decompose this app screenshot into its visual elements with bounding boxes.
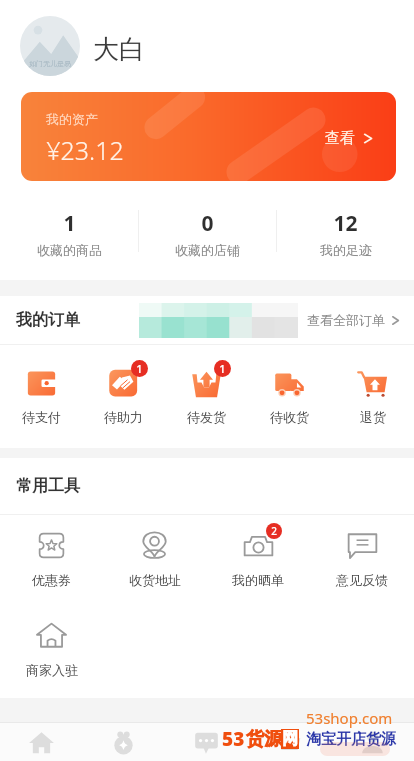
button[interactable]: 1 [0, 181, 138, 280]
staticText: 意见反馈 [336, 572, 388, 588]
button[interactable]: 优惠券 [0, 515, 103, 601]
button[interactable]: Cart [248, 723, 331, 761]
staticText: 12 [333, 209, 358, 238]
staticText: 53 [222, 726, 245, 752]
staticText: 查看全部订单 [307, 312, 385, 328]
button[interactable]: 商家入驻 [0, 604, 103, 692]
staticText: 收藏的商品 [37, 242, 102, 258]
staticText: 网 [282, 729, 298, 749]
staticText: 我的资产 [46, 111, 98, 127]
staticText: 常用工具 [16, 476, 80, 496]
staticText: 我的晒单 [232, 572, 284, 588]
button[interactable]: 2 [206, 515, 310, 601]
button[interactable]: 收货地址 [103, 515, 206, 601]
button[interactable]: Messages [165, 723, 248, 761]
staticText: 大白 [93, 33, 145, 66]
staticText: 1 [63, 209, 76, 238]
staticText: 待助力 [104, 409, 143, 425]
staticText: 优惠券 [32, 572, 71, 588]
button[interactable]: Avatar [20, 16, 80, 76]
button[interactable]: Profile [331, 723, 414, 761]
button[interactable]: 0 [139, 181, 276, 280]
staticText: 如门无儿是易 [29, 59, 71, 68]
staticText: 53shop.com [306, 708, 393, 728]
staticText: 退货 [360, 409, 386, 425]
staticText: 查看 [325, 129, 355, 148]
button[interactable]: 待收货 [248, 345, 331, 448]
button[interactable]: 查看全部订单 [307, 312, 400, 328]
staticText: 2 [271, 524, 277, 538]
button[interactable]: 查看 [325, 129, 374, 148]
staticText: 待支付 [22, 409, 61, 425]
staticText: 商家入驻 [26, 662, 78, 678]
staticText: 收货地址 [129, 572, 181, 588]
staticText: 淘宝开店货源 [306, 730, 396, 749]
button[interactable]: Earn money [82, 723, 165, 761]
button[interactable]: 1 [82, 345, 165, 448]
staticText: 我的订单 [16, 310, 80, 330]
button[interactable]: 12 [277, 181, 414, 280]
staticText: 待收货 [270, 409, 309, 425]
staticText: 收藏的店铺 [175, 242, 240, 258]
staticText: 0 [201, 209, 214, 238]
staticText: 货源 [246, 728, 282, 751]
staticText: 我的足迹 [320, 242, 372, 258]
button[interactable]: 我的资产 [21, 92, 396, 181]
staticText: 1 [219, 361, 226, 376]
staticText: 1 [136, 361, 143, 376]
button[interactable]: 待支付 [0, 345, 82, 448]
staticText: 待发货 [187, 409, 226, 425]
button[interactable]: 退货 [331, 345, 414, 448]
button[interactable]: Home [0, 723, 82, 761]
button[interactable]: 1 [165, 345, 248, 448]
button[interactable]: 意见反馈 [310, 515, 414, 601]
staticText: ¥23.12 [46, 133, 124, 167]
